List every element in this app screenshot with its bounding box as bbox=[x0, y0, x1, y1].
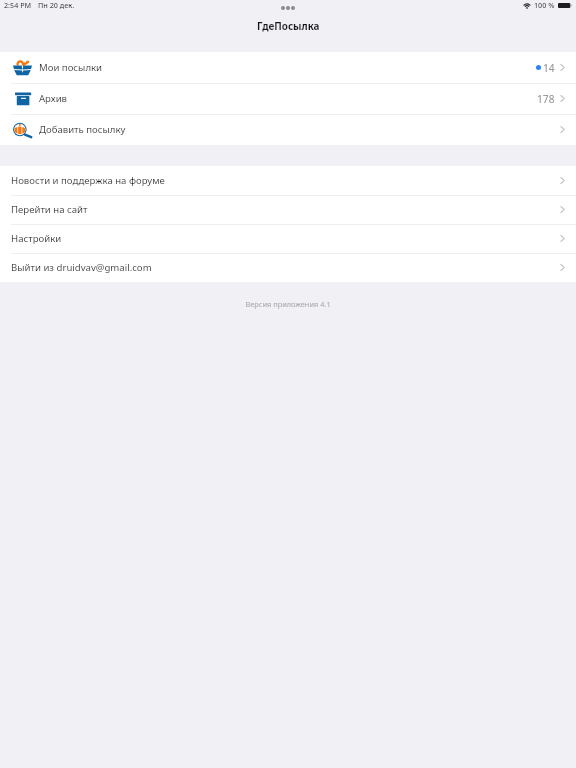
staticText: ГдеПосылка bbox=[257, 19, 320, 32]
staticText: Перейти на сайт bbox=[11, 203, 88, 216]
staticText: Мои посылки bbox=[39, 61, 103, 74]
staticText: 178 bbox=[537, 92, 555, 106]
staticText: Новости и поддержка на форуме bbox=[11, 174, 165, 187]
staticText: Версия приложения 4.1 bbox=[0, 299, 576, 309]
other: Мои посылки bbox=[13, 60, 32, 76]
button[interactable]: Настройки bbox=[0, 224, 576, 253]
staticText: Архив bbox=[39, 92, 68, 105]
staticText: 100 % bbox=[534, 0, 555, 10]
button[interactable]: Архив bbox=[0, 83, 576, 114]
staticText: 2:54 PM bbox=[4, 0, 32, 10]
staticText: 14 bbox=[543, 61, 555, 75]
button[interactable]: Добавить посылку bbox=[0, 114, 576, 145]
button[interactable]: Мои посылки bbox=[0, 52, 576, 83]
other: Архив bbox=[14, 91, 32, 107]
button[interactable]: Новости и поддержка на форуме bbox=[0, 166, 576, 195]
button[interactable]: Перейти на сайт bbox=[0, 195, 576, 224]
staticText: Выйти из druidvav@gmail.com bbox=[11, 261, 152, 274]
button[interactable]: Выйти из druidvav@gmail.com bbox=[0, 253, 576, 282]
staticText: Добавить посылку bbox=[39, 123, 126, 136]
staticText: Пн 20 дек. bbox=[38, 0, 75, 10]
staticText: Настройки bbox=[11, 232, 62, 245]
other: Добавить посылку bbox=[13, 122, 32, 138]
